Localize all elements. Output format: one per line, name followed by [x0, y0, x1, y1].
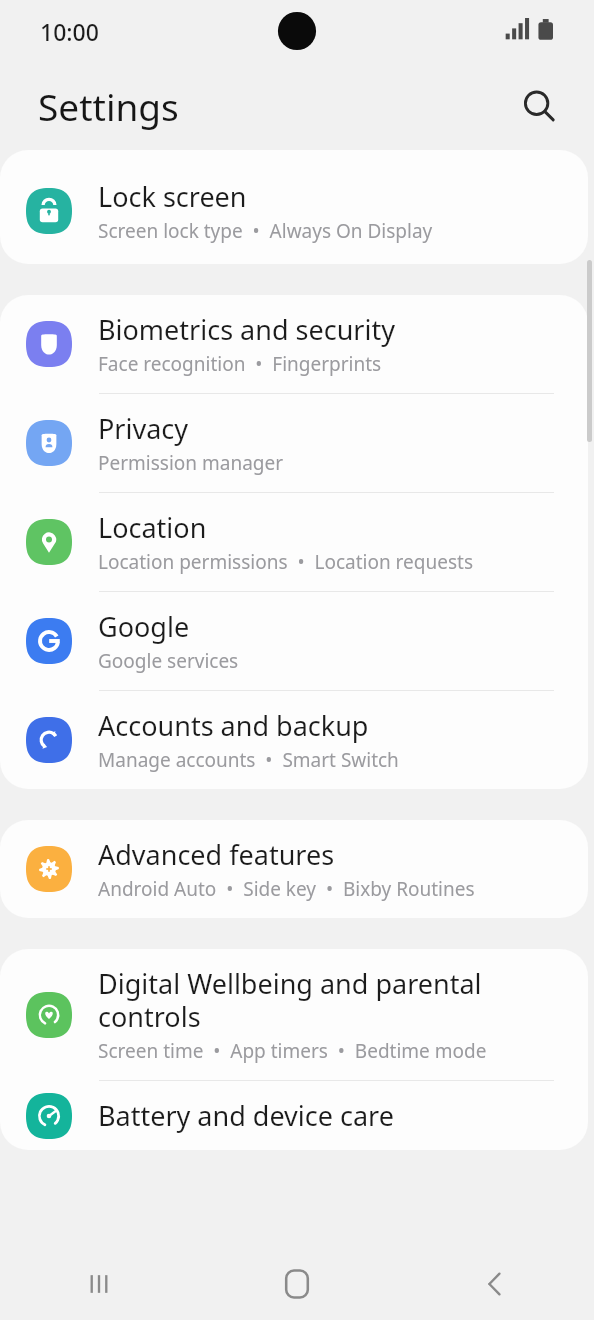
staticText: Advanced features [98, 836, 335, 873]
staticText: Biometrics and security [98, 311, 395, 348]
staticText: Lock screen [98, 178, 247, 215]
button[interactable]: Advanced features [0, 820, 588, 918]
button[interactable]: Battery and device care [0, 1081, 588, 1150]
button[interactable]: Lock screen [0, 162, 588, 260]
staticText: Permission manager [98, 450, 284, 476]
staticText: Face recognition • Fingerprints [98, 351, 382, 377]
button[interactable]: Digital Wellbeing and parental controls [0, 949, 588, 1080]
staticText: Digital Wellbeing and parental controls [98, 965, 482, 1035]
staticText: Android Auto • Side key • Bixby Routines [98, 876, 475, 902]
staticText: Privacy [98, 410, 189, 447]
button[interactable]: Google [0, 592, 588, 690]
staticText: Google [98, 608, 190, 645]
staticText: Screen lock type • Always On Display [98, 218, 433, 244]
staticText: Settings [38, 81, 179, 131]
staticText: Battery and device care [98, 1097, 394, 1134]
button[interactable]: Search [510, 77, 568, 135]
button[interactable]: Privacy [0, 394, 588, 492]
staticText: 10:00 [40, 16, 99, 47]
button[interactable]: Home [261, 1248, 333, 1320]
button[interactable]: Accounts and backup [0, 691, 588, 789]
button[interactable]: Location [0, 493, 588, 591]
button[interactable]: Recent apps [63, 1248, 135, 1320]
button[interactable]: Biometrics and security [0, 295, 588, 393]
staticText: Manage accounts • Smart Switch [98, 747, 399, 773]
staticText: Location [98, 509, 207, 546]
staticText: Location permissions • Location requests [98, 549, 473, 575]
button[interactable]: Back [459, 1248, 531, 1320]
staticText: Accounts and backup [98, 707, 369, 744]
staticText: Google services [98, 648, 239, 674]
staticText: Screen time • App timers • Bedtime mode [98, 1038, 487, 1064]
